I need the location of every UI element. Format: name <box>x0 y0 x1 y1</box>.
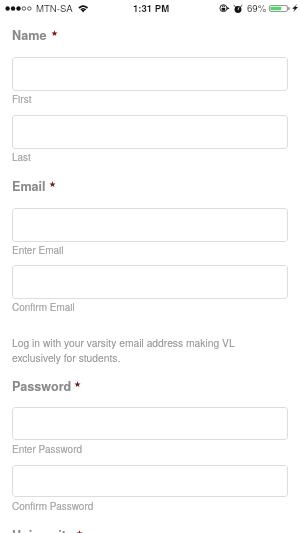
button[interactable] <box>12 465 288 497</box>
staticText: Password <box>12 377 72 395</box>
other: Rotation lock <box>218 3 231 14</box>
button[interactable] <box>12 407 288 440</box>
staticText: First <box>12 92 32 106</box>
staticText: Name <box>12 26 47 44</box>
staticText: Enter Password <box>12 442 83 456</box>
staticText: Confirm Email <box>12 300 75 314</box>
staticText: 1:31 PM <box>133 1 170 15</box>
staticText: Last <box>12 150 31 164</box>
staticText: Log in with your varsity email address m… <box>12 335 235 349</box>
staticText: 69% <box>247 1 267 15</box>
other: Wi-Fi <box>78 3 89 13</box>
staticText: exclusively for students. <box>12 350 121 364</box>
staticText: Confirm Password <box>12 499 94 513</box>
other: Battery 69 percent charging <box>268 5 292 13</box>
other: Signal strength <box>0 0 300 16</box>
button[interactable] <box>12 208 288 242</box>
button[interactable] <box>12 265 288 299</box>
staticText: MTN-SA <box>36 1 73 15</box>
button[interactable] <box>12 57 288 91</box>
staticText: Enter Email <box>12 243 64 257</box>
staticText: Email <box>12 177 46 195</box>
button[interactable] <box>12 115 288 149</box>
other: Alarm <box>232 3 244 14</box>
staticText: University <box>12 526 73 533</box>
